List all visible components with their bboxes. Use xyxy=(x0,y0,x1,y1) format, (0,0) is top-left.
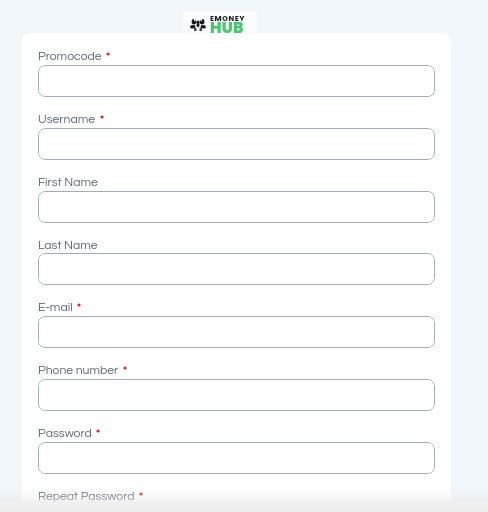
button[interactable] xyxy=(38,379,435,411)
staticText: EMONEY xyxy=(210,13,246,23)
staticText: Last Name xyxy=(38,239,98,252)
staticText: Password xyxy=(38,427,92,440)
button[interactable] xyxy=(38,65,435,97)
button[interactable] xyxy=(38,316,435,348)
button[interactable] xyxy=(38,442,435,474)
button[interactable] xyxy=(38,128,435,160)
staticText: Phone number xyxy=(38,364,119,377)
button[interactable] xyxy=(38,253,435,285)
staticText: E-mail xyxy=(38,301,73,314)
staticText: HUB xyxy=(210,17,244,39)
button[interactable] xyxy=(38,191,435,223)
staticText: First Name xyxy=(38,176,98,189)
button[interactable]: EMoney Hub xyxy=(183,11,257,34)
staticText: Promocode xyxy=(38,50,102,63)
staticText: Repeat Password xyxy=(38,490,135,503)
staticText: Username xyxy=(38,113,96,126)
